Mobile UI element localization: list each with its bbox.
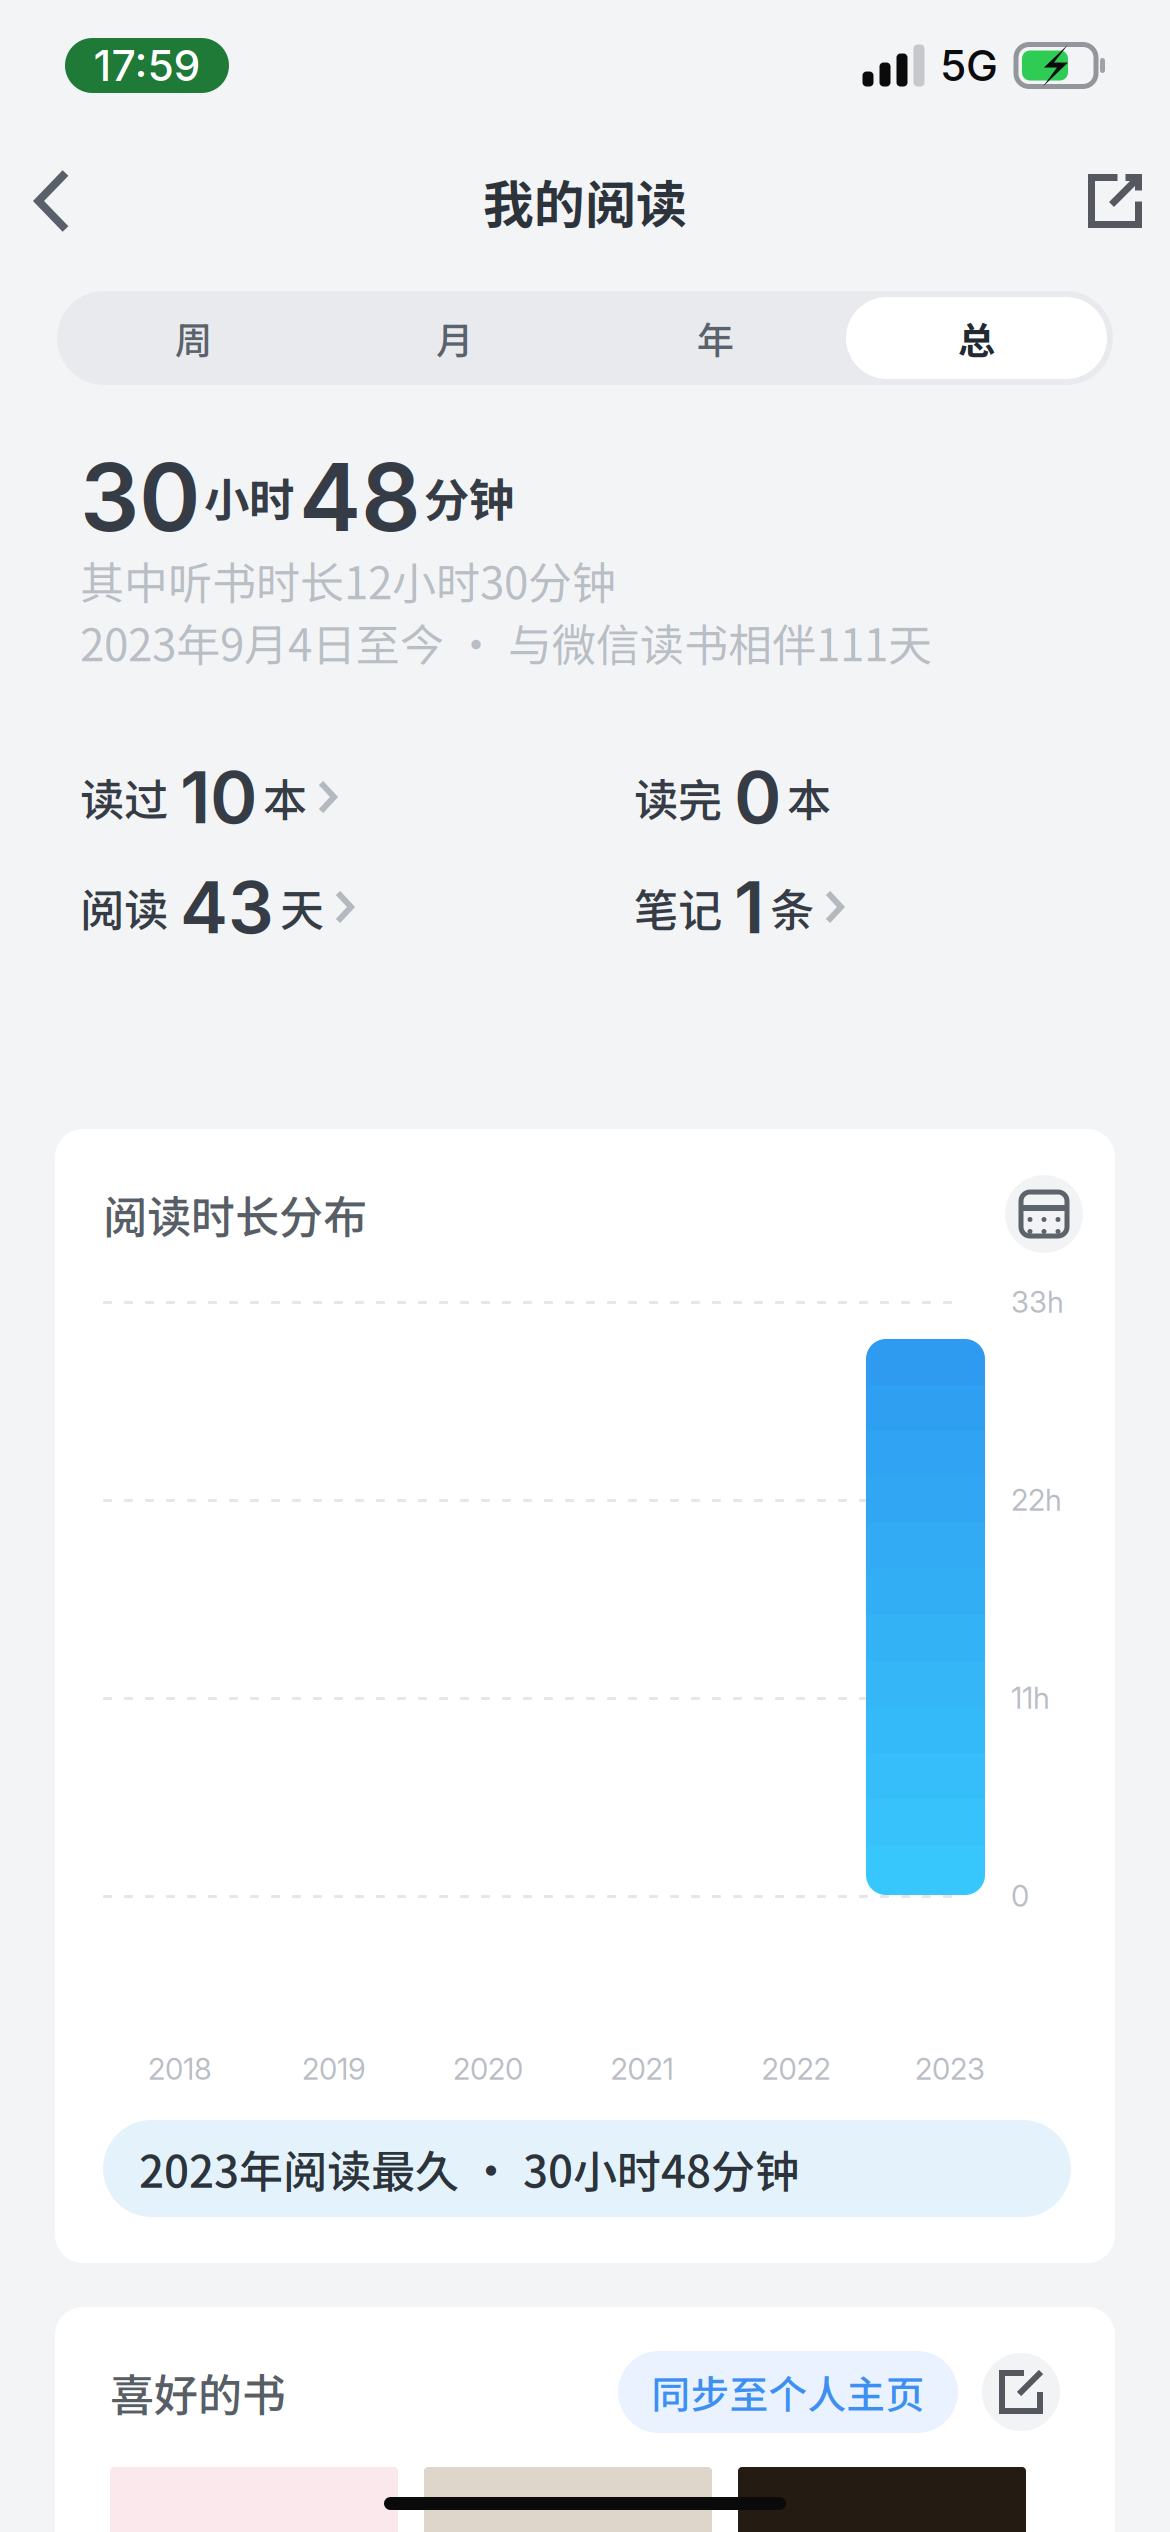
staticText: 48 [299,440,421,553]
staticText: 2023年9月4日至今 · 与微信读书相伴111天 [80,610,932,674]
staticText: 2023 [915,2051,985,2087]
staticText: 小时 [204,464,294,530]
staticText: 43 [180,863,274,950]
staticText: 年 [697,311,734,365]
staticText: 分钟 [424,464,514,530]
staticText: 读完 [634,765,722,829]
staticText: 我的阅读 [483,164,687,238]
staticText: 33h [1011,1284,1064,1320]
button[interactable]: 阅读 [80,868,634,946]
staticText: 其中听书时长12小时30分钟 [80,548,616,612]
staticText: 0 [1011,1878,1029,1914]
staticText: 2018 [148,2051,212,2087]
staticText: 同步至个人主页 [651,2364,924,2420]
button[interactable]: Share [1060,151,1170,251]
button[interactable]: 月 [324,297,585,379]
staticText: 0 [734,753,781,840]
staticText: 17:59 [93,40,200,91]
staticText: 2019 [302,2051,366,2087]
staticText: 总 [958,311,995,365]
staticText: 5G [940,40,998,91]
staticText: 22h [1011,1482,1062,1518]
staticText: 周 [175,311,212,365]
staticText: 阅读 [80,875,168,939]
button[interactable]: 同步至个人主页 [618,2351,958,2433]
staticText: 2020 [453,2051,523,2087]
staticText: 本 [787,765,831,829]
staticText: 阅读时长分布 [103,1182,367,1246]
staticText: 10 [180,753,257,840]
button[interactable]: 笔记 [634,868,1090,946]
staticText: 1 [734,863,764,950]
button[interactable]: 周 [63,297,324,379]
staticText: 11h [1011,1680,1050,1716]
button[interactable]: 读完 [634,758,1090,836]
staticText: 天 [280,875,324,939]
staticText: 读过 [80,765,168,829]
staticText: 2022 [761,2051,830,2087]
staticText: 30 [80,440,201,553]
button[interactable]: Calendar [1005,1175,1083,1253]
staticText: 条 [770,875,814,939]
staticText: 本 [263,765,307,829]
staticText: 喜好的书 [110,2360,286,2424]
button[interactable]: 读过 [80,758,634,836]
staticText: 月 [436,311,473,365]
button[interactable]: Edit [982,2353,1060,2431]
staticText: 2023年阅读最久 · 30小时48分钟 [139,2137,799,2200]
staticText: 2021 [610,2051,673,2087]
button[interactable]: 总 [846,297,1107,379]
staticText: 笔记 [634,875,722,939]
button[interactable]: 年 [585,297,846,379]
button[interactable]: Back [0,151,104,251]
